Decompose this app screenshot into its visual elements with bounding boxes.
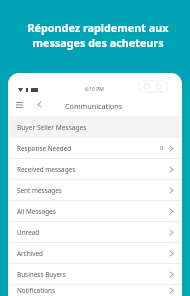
staticText: Sent messages: [17, 186, 62, 195]
staticText: All Messages: [17, 207, 56, 216]
button[interactable]: Received messages: [8, 159, 182, 180]
button[interactable]: Menu: [8, 95, 26, 116]
staticText: Répondez rapidement aux messages des ach…: [3, 20, 190, 50]
button[interactable]: Sent messages: [8, 180, 182, 201]
staticText: Unread: [17, 228, 40, 237]
staticText: Business Buyers: [17, 270, 66, 279]
staticText: Response Needed: [17, 144, 72, 153]
staticText: 6:10 PM: [85, 86, 104, 93]
button[interactable]: Archived: [8, 243, 182, 264]
button[interactable]: Response Needed: [8, 138, 182, 159]
staticText: Archived: [17, 249, 44, 258]
button[interactable]: Unread: [8, 222, 182, 243]
button[interactable]: Business Buyers: [8, 264, 182, 285]
button[interactable]: All Messages: [8, 201, 182, 222]
button[interactable]: Notifications: [8, 285, 182, 296]
button[interactable]: Back: [26, 95, 46, 116]
staticText: Received messages: [17, 165, 76, 174]
staticText: Notifications: [17, 286, 56, 295]
staticText: Communications: [65, 101, 123, 111]
staticText: 0: [160, 144, 164, 152]
staticText: Buyer Seller Messages: [17, 123, 87, 132]
